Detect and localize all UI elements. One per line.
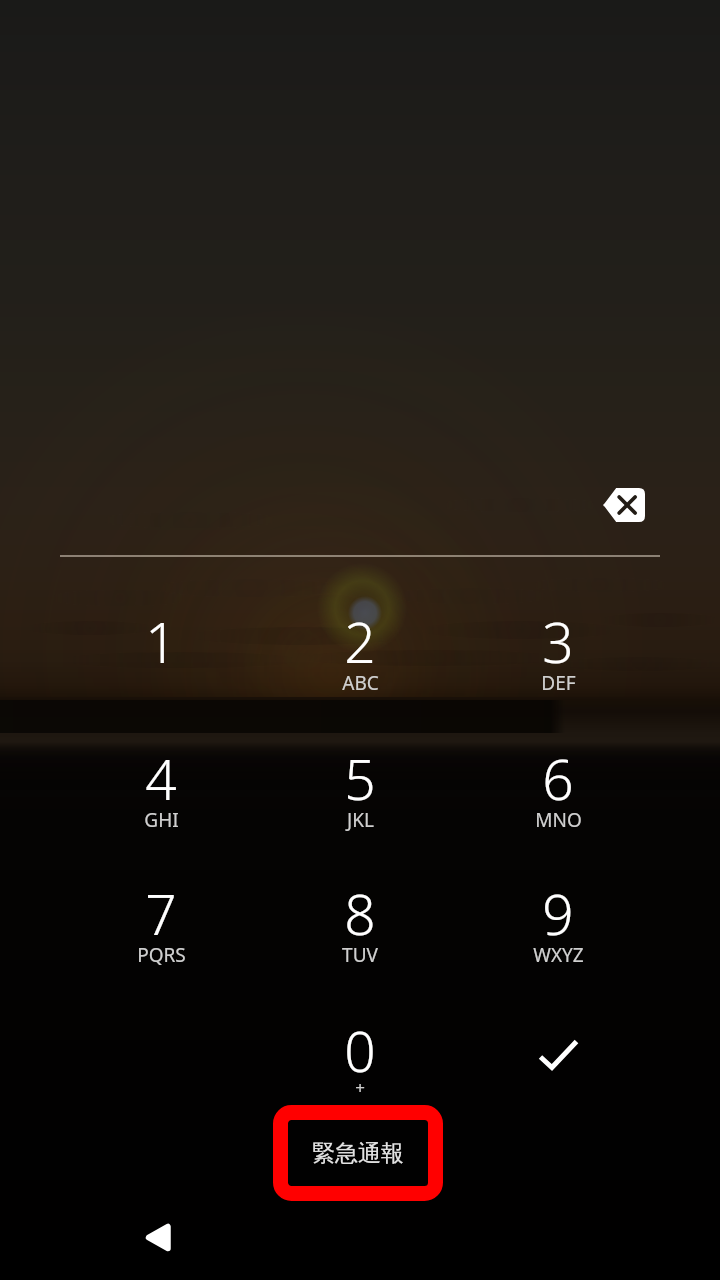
button[interactable]: Delete [582, 468, 664, 542]
button[interactable]: 5 [278, 727, 442, 849]
staticText: 8 [344, 876, 376, 951]
staticText: DEF [541, 670, 576, 696]
button[interactable]: 9 [476, 862, 640, 984]
staticText: 9 [542, 876, 574, 951]
button[interactable]: 1 [79, 590, 243, 712]
staticText: 7 [145, 876, 177, 951]
staticText: GHI [144, 807, 179, 833]
staticText: 0 [344, 1013, 376, 1088]
staticText: 6 [542, 741, 574, 816]
staticText: + [355, 1076, 365, 1099]
button[interactable]: 8 [278, 862, 442, 984]
button[interactable]: 7 [79, 862, 243, 984]
staticText: PQRS [137, 942, 186, 968]
staticText: TUV [342, 942, 378, 968]
staticText: ABC [342, 670, 379, 696]
button[interactable]: Enter [478, 1004, 638, 1104]
staticText: 4 [145, 741, 177, 816]
button[interactable]: 緊急通報 [273, 1105, 443, 1201]
button[interactable]: 2 [278, 590, 442, 712]
staticText: MNO [535, 807, 582, 833]
staticText: 5 [344, 741, 376, 816]
staticText: 2 [344, 604, 376, 679]
staticText: 3 [542, 604, 574, 679]
button[interactable]: 3 [476, 590, 640, 712]
button[interactable]: 4 [79, 727, 243, 849]
staticText: WXYZ [533, 942, 584, 968]
button[interactable]: 6 [476, 727, 640, 849]
staticText: 1 [145, 604, 177, 679]
staticText: JKL [347, 807, 374, 833]
button[interactable]: Back [117, 1199, 199, 1275]
staticText: 緊急通報 [312, 1139, 404, 1168]
button[interactable]: 0 [278, 999, 442, 1103]
